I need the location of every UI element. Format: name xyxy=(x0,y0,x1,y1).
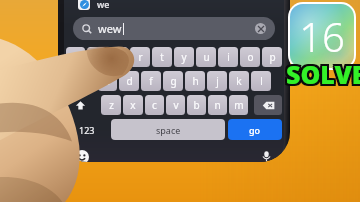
staticText: r xyxy=(138,50,143,64)
staticText: SOLVED xyxy=(288,55,360,89)
button[interactable]: wew xyxy=(73,17,275,40)
button[interactable]: 123 xyxy=(66,119,108,140)
button[interactable]: c xyxy=(145,95,164,115)
staticText: SOLVED xyxy=(286,59,360,93)
button[interactable]: p xyxy=(262,47,282,67)
button[interactable]: e xyxy=(108,47,128,67)
staticText: n xyxy=(214,98,221,112)
staticText: go xyxy=(249,124,261,136)
button[interactable]: Shift xyxy=(66,95,95,115)
button[interactable]: 16 xyxy=(290,4,354,68)
staticText: SOLVED xyxy=(284,59,360,93)
staticText: space xyxy=(156,124,181,136)
button[interactable]: h xyxy=(185,71,205,91)
button[interactable]: go xyxy=(228,119,282,140)
staticText: g xyxy=(170,74,177,88)
button[interactable]: g xyxy=(163,71,183,91)
button[interactable]: x xyxy=(123,95,143,115)
staticText: k xyxy=(236,74,242,88)
button[interactable]: y xyxy=(174,47,194,67)
button[interactable]: Backspace xyxy=(254,95,282,115)
staticText: f xyxy=(149,74,153,88)
staticText: m xyxy=(234,98,244,112)
staticText: SOLVED xyxy=(284,57,360,91)
staticText: SOLVED xyxy=(288,57,360,91)
staticText: z xyxy=(109,98,114,112)
button[interactable]: w xyxy=(87,47,106,67)
staticText: p xyxy=(269,50,276,64)
staticText: h xyxy=(192,74,199,88)
button[interactable]: b xyxy=(187,95,206,115)
button[interactable]: d xyxy=(119,71,139,91)
staticText: d xyxy=(126,74,133,88)
button[interactable]: z xyxy=(101,95,121,115)
button[interactable]: f xyxy=(141,71,161,91)
staticText: y xyxy=(181,50,187,64)
button[interactable]: r xyxy=(130,47,150,67)
button[interactable]: l xyxy=(251,71,271,91)
staticText: x xyxy=(130,98,136,112)
button[interactable]: Dictation xyxy=(259,149,274,162)
button[interactable]: a xyxy=(77,71,96,91)
staticText: q xyxy=(72,50,79,64)
button[interactable]: n xyxy=(208,95,227,115)
staticText: j xyxy=(216,74,219,88)
button[interactable]: Clear text xyxy=(255,23,266,34)
staticText: i xyxy=(227,50,230,64)
button[interactable]: q xyxy=(66,47,85,67)
staticText: 16 xyxy=(299,9,345,63)
button[interactable]: u xyxy=(196,47,216,67)
staticText: wew xyxy=(98,21,122,36)
staticText: SOLVED xyxy=(288,59,360,93)
button[interactable]: o xyxy=(240,47,260,67)
staticText: c xyxy=(152,98,157,112)
staticText: t xyxy=(160,50,164,64)
button[interactable]: t xyxy=(152,47,172,67)
button[interactable]: we xyxy=(64,0,284,12)
staticText: v xyxy=(173,98,179,112)
staticText: o xyxy=(247,50,254,64)
staticText: SOLVED xyxy=(284,55,360,89)
staticText: w xyxy=(93,50,101,64)
staticText: b xyxy=(193,98,200,112)
button[interactable]: Emoji keyboard xyxy=(74,149,89,162)
button[interactable]: m xyxy=(229,95,248,115)
staticText: u xyxy=(203,50,210,64)
staticText: we xyxy=(97,0,110,10)
button[interactable]: i xyxy=(218,47,238,67)
button[interactable]: SOLVED xyxy=(286,57,360,91)
button[interactable]: v xyxy=(166,95,185,115)
staticText: SOLVED xyxy=(286,57,360,91)
staticText: 123 xyxy=(79,124,95,136)
button[interactable]: s xyxy=(98,71,117,91)
staticText: l xyxy=(260,74,263,88)
staticText: SOLVED xyxy=(286,55,360,89)
button[interactable]: space xyxy=(111,119,225,140)
button[interactable]: k xyxy=(229,71,249,91)
staticText: s xyxy=(105,74,110,88)
button[interactable]: j xyxy=(207,71,227,91)
